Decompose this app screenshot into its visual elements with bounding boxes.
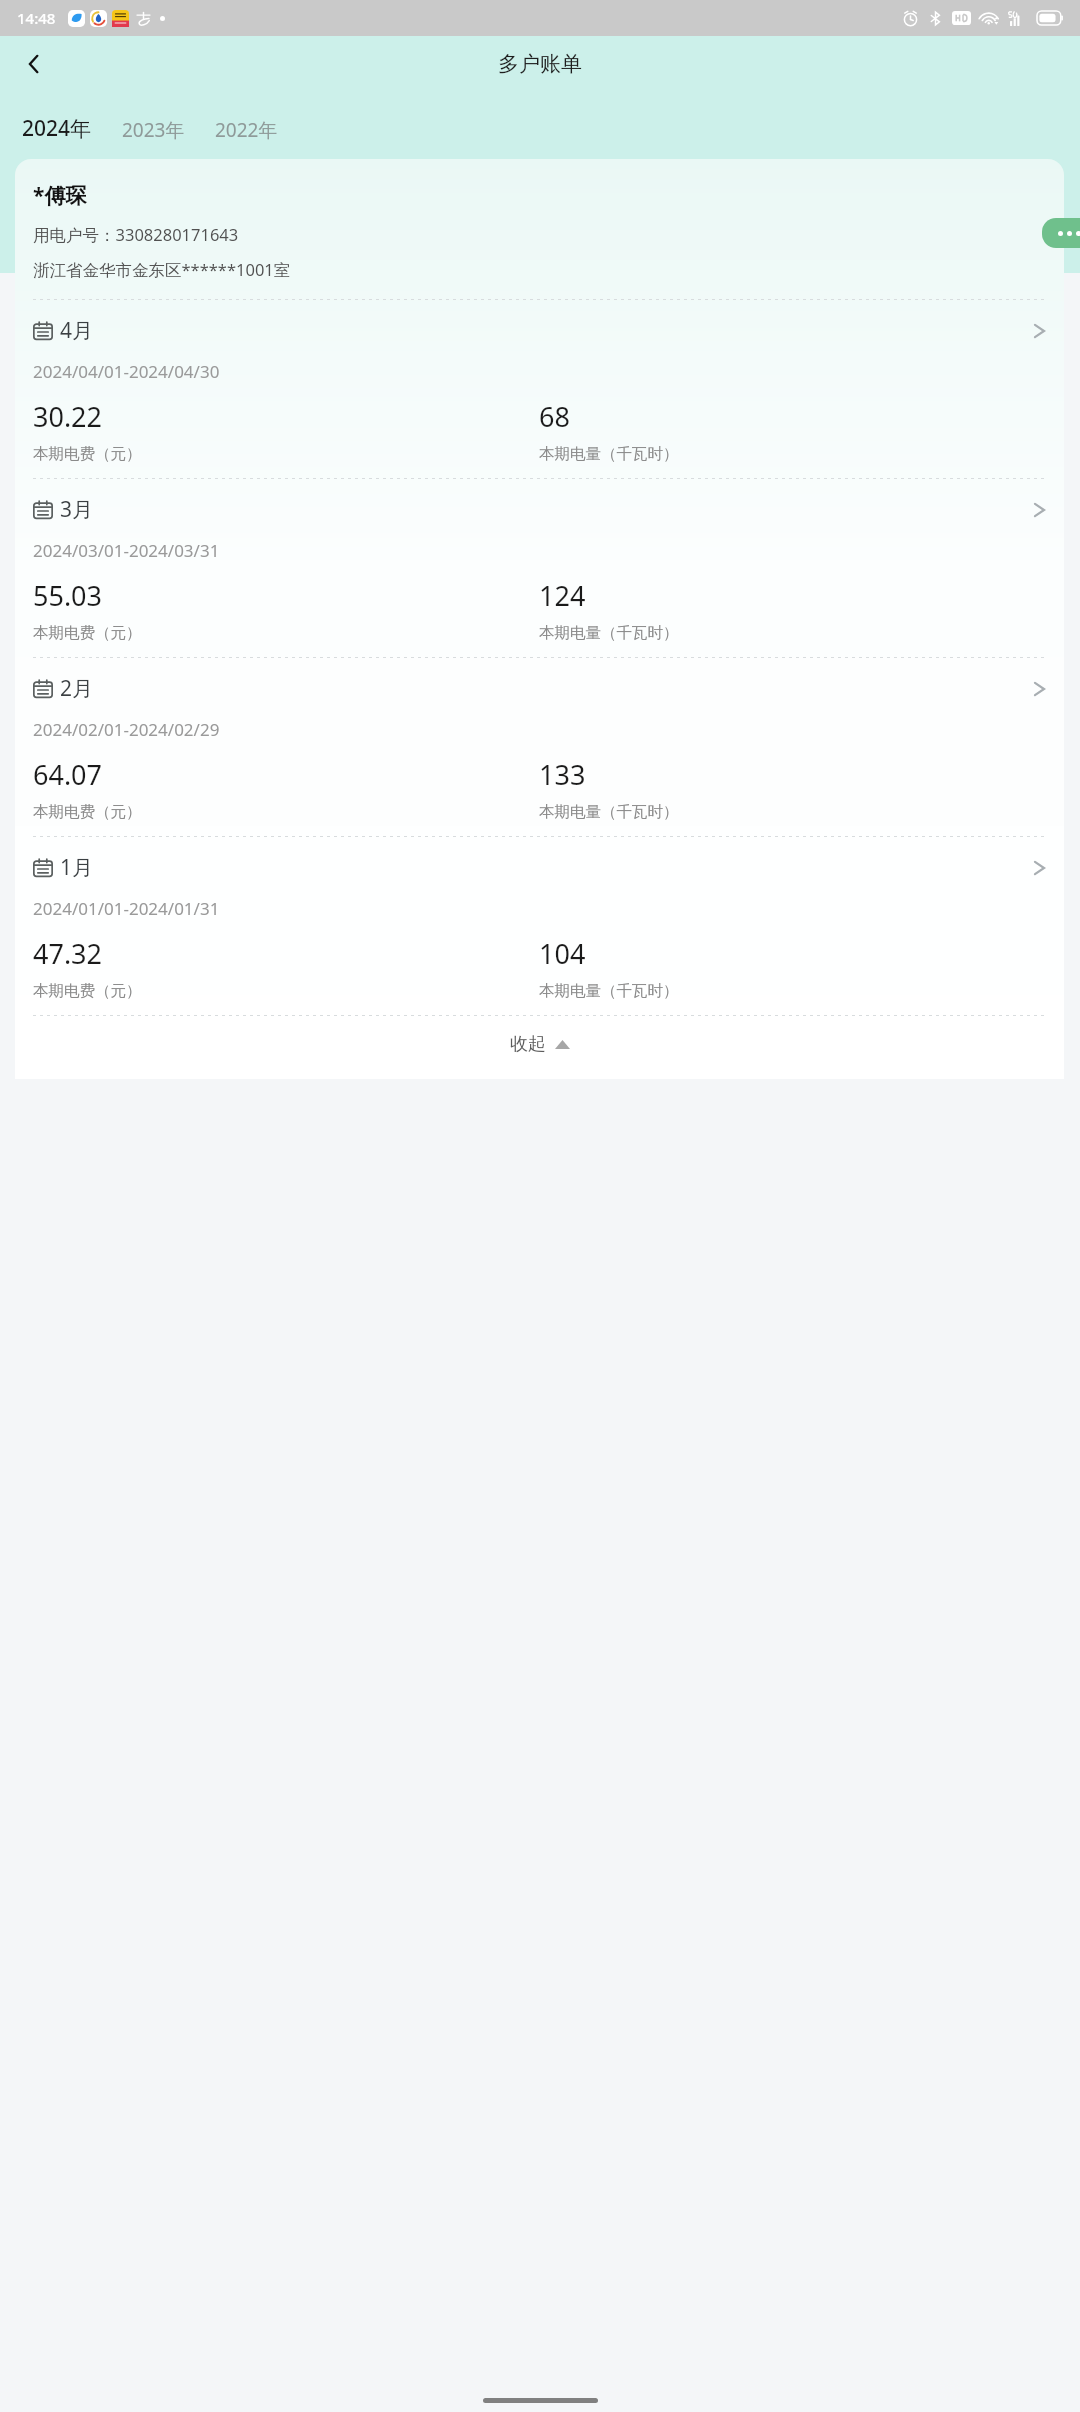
staticText: 用电户号：3308280171643 <box>33 223 239 246</box>
staticText: 本期电费（元） <box>33 444 142 464</box>
staticText: *傅琛 <box>33 181 87 210</box>
staticText: 133 <box>539 756 586 793</box>
staticText: 30.22 <box>33 398 103 435</box>
staticText: 55.03 <box>33 577 103 614</box>
button[interactable]: 2022年 <box>207 113 286 147</box>
staticText: 2022年 <box>215 117 278 143</box>
button[interactable]: 2024年 <box>14 110 100 147</box>
staticText: 2024/02/01-2024/02/29 <box>33 718 220 741</box>
staticText: 2024/01/01-2024/01/31 <box>33 897 220 920</box>
staticText: 1月 <box>60 853 94 882</box>
staticText: 收起 <box>510 1033 546 1056</box>
staticText: 2024/04/01-2024/04/30 <box>33 360 220 383</box>
button[interactable]: 3月 <box>15 479 1064 657</box>
staticText: 124 <box>539 577 586 614</box>
button[interactable]: 2月 <box>15 658 1064 836</box>
staticText: 本期电费（元） <box>33 623 142 643</box>
staticText: 14:48 <box>17 8 56 28</box>
staticText: 4月 <box>60 316 94 345</box>
button[interactable]: More options <box>1042 218 1080 248</box>
staticText: 68 <box>539 398 570 435</box>
button[interactable]: 收起 <box>15 1016 1064 1073</box>
staticText: 2023年 <box>122 117 185 143</box>
staticText: 本期电费（元） <box>33 981 142 1001</box>
staticText: 本期电量（千瓦时） <box>539 444 679 464</box>
button[interactable]: 4月 <box>15 300 1064 478</box>
staticText: 64.07 <box>33 756 103 793</box>
staticText: 本期电费（元） <box>33 802 142 822</box>
staticText: 本期电量（千瓦时） <box>539 981 679 1001</box>
staticText: 本期电量（千瓦时） <box>539 802 679 822</box>
button[interactable]: 1月 <box>15 837 1064 1015</box>
staticText: 本期电量（千瓦时） <box>539 623 679 643</box>
staticText: 3月 <box>60 495 94 524</box>
button[interactable]: 2023年 <box>114 113 193 147</box>
staticText: 2024年 <box>22 114 92 143</box>
staticText: 2月 <box>60 674 94 703</box>
staticText: 浙江省金华市金东区******1001室 <box>33 258 291 281</box>
staticText: 47.32 <box>33 935 103 972</box>
button[interactable]: Back <box>8 38 60 90</box>
staticText: 2024/03/01-2024/03/31 <box>33 539 220 562</box>
staticText: 104 <box>539 935 586 972</box>
staticText: 多户账单 <box>498 51 582 77</box>
